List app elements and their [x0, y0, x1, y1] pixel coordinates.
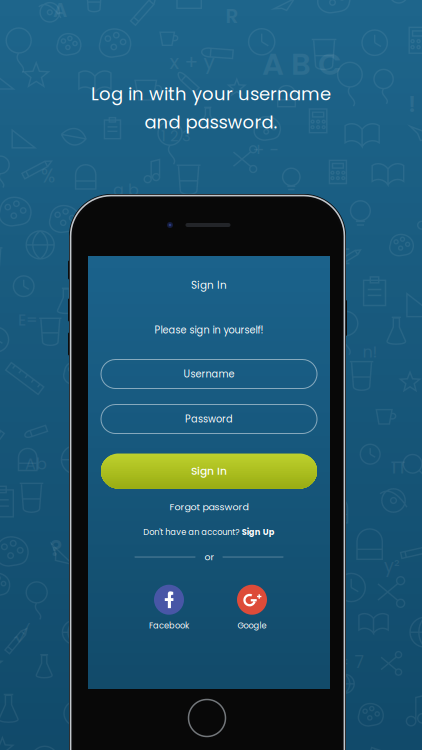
staticText: Sign In	[191, 278, 227, 292]
button[interactable]: Sign In	[101, 453, 317, 488]
staticText: E=	[18, 309, 38, 331]
staticText: Σ	[338, 241, 350, 271]
button[interactable]: Password	[101, 404, 317, 433]
staticText: Facebook	[149, 620, 189, 631]
staticText: Please sign in yourself!	[154, 323, 263, 337]
staticText: 1 2 3	[161, 126, 191, 146]
staticText: R	[225, 2, 238, 30]
staticText: Sign In	[191, 463, 227, 478]
staticText: or	[204, 550, 213, 564]
staticText: Google	[237, 620, 266, 631]
staticText: Don't have an account?	[143, 526, 239, 538]
staticText: Forgot password	[169, 500, 248, 514]
staticText: a b	[113, 179, 139, 201]
staticText: y²	[384, 554, 400, 578]
staticText: + -	[252, 138, 279, 162]
button[interactable]: Facebook	[149, 585, 189, 631]
staticText: %	[41, 163, 55, 189]
staticText: Password	[185, 412, 233, 426]
staticText: Sign Up	[242, 526, 275, 538]
staticText: n!	[362, 341, 377, 363]
staticText: x + y	[169, 48, 214, 76]
button[interactable]: Username	[101, 359, 317, 388]
button[interactable]: Don't have an account?	[143, 525, 275, 539]
staticText: π	[390, 451, 405, 481]
staticText: Log in with your username	[91, 81, 331, 106]
staticText: ?	[50, 532, 62, 564]
staticText: and password.	[144, 109, 277, 135]
staticText: Ab	[25, 453, 47, 475]
staticText: !	[408, 88, 416, 120]
staticText: A B C	[262, 42, 342, 85]
staticText: = 7	[336, 650, 363, 674]
button[interactable]: Forgot password	[159, 499, 259, 515]
staticText: √	[13, 619, 30, 649]
staticText: A	[53, 0, 67, 24]
button[interactable]: Google	[237, 585, 267, 631]
staticText: Username	[183, 367, 234, 381]
